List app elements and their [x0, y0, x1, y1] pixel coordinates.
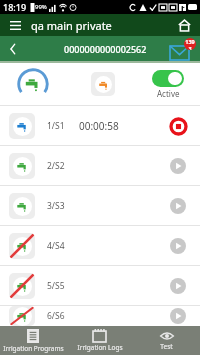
staticText: 3/S3	[47, 200, 65, 212]
staticText: Irrigation Programs	[3, 344, 64, 353]
button[interactable]: 3/S3	[0, 186, 200, 225]
button[interactable]: Start program	[164, 152, 192, 180]
button[interactable]: Home	[175, 16, 193, 34]
button[interactable]: Irrigation Logs	[66, 326, 133, 355]
button[interactable]: Messages, 1393 unread	[170, 38, 196, 60]
button[interactable]: Stop program	[164, 112, 192, 140]
button[interactable]: Open navigation menu	[7, 17, 23, 33]
button[interactable]: Manual watering	[91, 72, 115, 96]
button[interactable]: 5/S5	[0, 266, 200, 305]
staticText: 99%	[35, 3, 47, 11]
button[interactable]: Active	[140, 70, 196, 99]
button[interactable]: 2/S2	[0, 146, 200, 185]
staticText: 1/S1	[47, 120, 65, 132]
button[interactable]: Irrigation Programs	[0, 326, 66, 355]
staticText: 1393	[184, 38, 196, 50]
staticText: 5/S5	[47, 280, 65, 292]
staticText: 00:00:58	[79, 119, 119, 133]
button[interactable]: Start program	[164, 272, 192, 300]
staticText: 4/S4	[47, 240, 65, 252]
button[interactable]: Start program	[164, 232, 192, 260]
staticText: Active	[157, 88, 180, 99]
staticText: Irrigation Logs	[77, 343, 123, 352]
button[interactable]: Back	[4, 40, 22, 58]
button[interactable]: Start program	[164, 192, 192, 220]
staticText: qa main private	[31, 18, 112, 33]
staticText: Test	[160, 342, 173, 351]
staticText: 6/S6	[47, 310, 65, 322]
button[interactable]: 6/S6	[0, 306, 200, 326]
staticText: 18:19	[3, 1, 27, 13]
button[interactable]: Water meter	[0, 63, 66, 105]
button[interactable]: Test	[133, 326, 200, 355]
button[interactable]: Start program	[164, 306, 192, 326]
staticText: 2/S2	[47, 160, 65, 172]
staticText: 0000000000002562	[64, 43, 147, 55]
button[interactable]: 4/S4	[0, 226, 200, 265]
button[interactable]: 1/S1	[0, 106, 200, 145]
